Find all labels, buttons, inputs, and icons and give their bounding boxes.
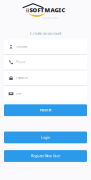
button[interactable]: Login bbox=[4, 131, 87, 143]
staticText: UserName bbox=[16, 45, 27, 48]
staticText: Email bbox=[16, 92, 22, 95]
staticText: Phone bbox=[16, 61, 25, 64]
button[interactable]: UserName bbox=[4, 39, 87, 54]
staticText: Register New User bbox=[31, 154, 60, 158]
staticText: REGISTER bbox=[39, 108, 51, 112]
staticText: SOFT MAGIC bbox=[30, 6, 66, 14]
staticText: Login bbox=[41, 135, 50, 140]
button[interactable]: REGISTER bbox=[4, 104, 87, 116]
button[interactable]: Email bbox=[4, 86, 87, 101]
staticText: Password bbox=[16, 76, 28, 80]
staticText: SOFTWARE SOLUTIONS bbox=[42, 17, 58, 19]
button[interactable]: Password bbox=[4, 71, 87, 85]
staticText: Create an account bbox=[30, 30, 61, 36]
button[interactable]: Phone bbox=[4, 55, 87, 70]
button[interactable]: Register New User bbox=[4, 150, 87, 162]
